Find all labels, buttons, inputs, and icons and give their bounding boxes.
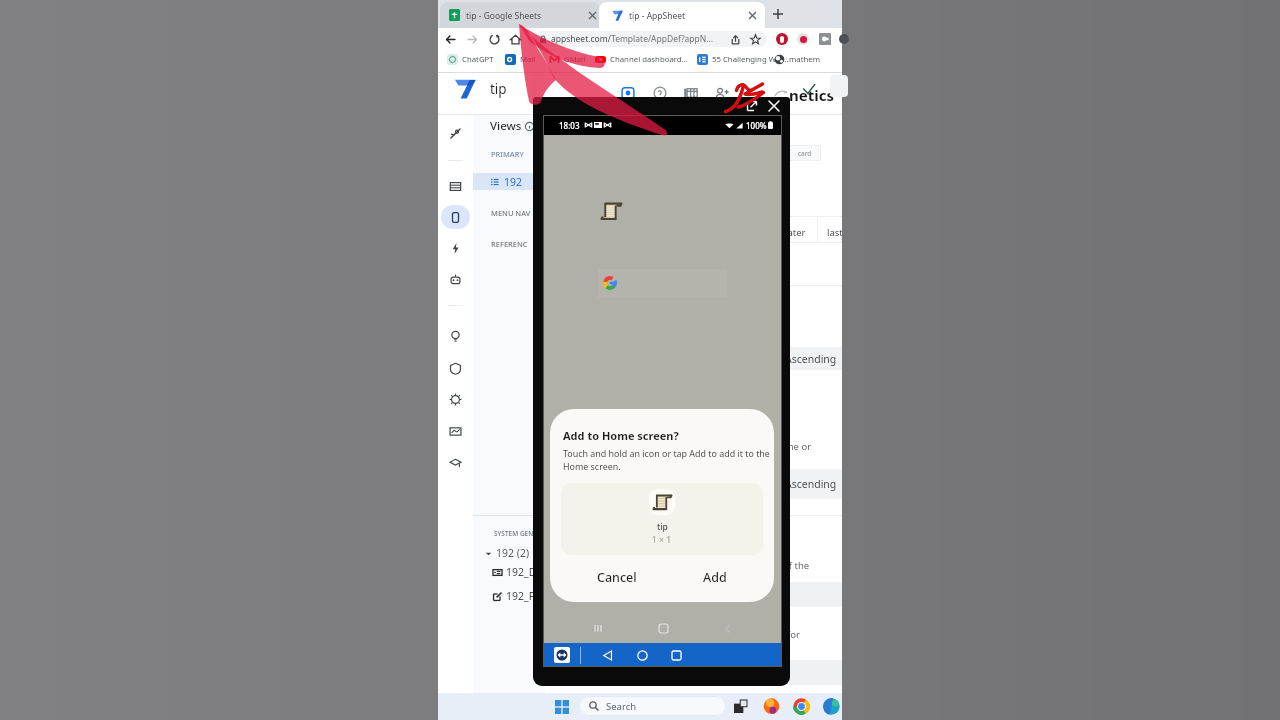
button[interactable]: Security: [441, 356, 470, 380]
button[interactable]: Recent apps: [588, 618, 608, 638]
button[interactable]: Actions: [441, 236, 470, 260]
button[interactable]: Home: [635, 648, 650, 663]
button[interactable]: 192_Fo: [493, 589, 541, 603]
button[interactable]: 55 Challenging Wor...: [694, 52, 792, 67]
staticText: Add: [703, 569, 727, 586]
button[interactable]: Preview: [615, 80, 641, 106]
button[interactable]: Chrome: [792, 697, 810, 715]
button[interactable]: Monitor: [441, 419, 470, 443]
button[interactable]: Close tab: [585, 8, 599, 22]
staticText: Search: [606, 700, 637, 713]
button[interactable]: Start: [553, 698, 570, 715]
button[interactable]: mathem: [771, 52, 823, 67]
staticText: tip - Google Sheets: [466, 10, 542, 22]
button[interactable]: Bookmark: [746, 30, 764, 48]
button[interactable]: Search: [579, 696, 726, 716]
button[interactable]: Record: [797, 33, 809, 45]
staticText: REFERENC: [491, 239, 528, 249]
button[interactable]: Task view: [732, 698, 748, 714]
button[interactable]: Redo: [768, 80, 794, 106]
button[interactable]: Home: [653, 618, 673, 638]
staticText: Views: [490, 118, 522, 134]
button[interactable]: Help: [647, 80, 673, 106]
staticText: 55 Challenging Wor...: [712, 54, 789, 65]
staticText: GMail: [564, 54, 586, 65]
button[interactable]: Manage: [441, 451, 470, 475]
button[interactable]: [598, 269, 727, 298]
staticText: 100%: [746, 120, 767, 131]
button[interactable]: tip - Google Sheets: [440, 2, 600, 28]
button[interactable]: Share: [726, 30, 744, 48]
staticText: for: [787, 628, 800, 641]
staticText: Add to Home screen?: [563, 428, 679, 443]
staticText: Ascending: [785, 477, 837, 491]
button[interactable]: Settings: [441, 387, 470, 411]
staticText: later: [785, 226, 806, 239]
staticText: tip: [490, 80, 507, 98]
staticText: Channel dashboard...: [610, 54, 688, 65]
button[interactable]: App: [441, 205, 470, 229]
staticText: of the: [783, 559, 810, 572]
button[interactable]: Add user: [709, 80, 735, 106]
button[interactable]: Bots: [441, 267, 470, 291]
staticText: Template/AppDef?appN...: [611, 33, 714, 45]
button[interactable]: Pop out: [744, 98, 760, 114]
staticText: one or: [782, 440, 812, 453]
staticText: card: [798, 149, 812, 158]
button[interactable]: Mail: [502, 52, 539, 67]
staticText: 192 (2): [496, 546, 530, 560]
button[interactable]: Extension: [776, 33, 788, 45]
button[interactable]: Data: [441, 174, 470, 198]
button[interactable]: 192: [473, 173, 545, 190]
button[interactable]: Back: [600, 648, 615, 663]
staticText: tip: [657, 521, 668, 533]
staticText: last: [827, 226, 843, 239]
staticText: Cancel: [597, 569, 637, 586]
button[interactable]: 192 (2): [485, 546, 530, 560]
button[interactable]: ChatGPT: [444, 52, 497, 67]
button[interactable]: Intelligence: [441, 324, 470, 348]
staticText: MENU NAV: [491, 208, 531, 218]
button[interactable]: Reload: [485, 30, 503, 48]
staticText: netics: [789, 85, 834, 105]
button[interactable]: Forward: [463, 30, 481, 48]
button[interactable]: Data: [678, 80, 704, 106]
staticText: 18:03: [559, 120, 580, 131]
button[interactable]: Automation: [443, 121, 468, 145]
staticText: mathem: [789, 54, 820, 65]
staticText: ChatGPT: [462, 54, 494, 65]
staticText: 192_De: [506, 565, 543, 579]
staticText: Touch and hold an icon or tap Add to add…: [563, 447, 771, 472]
button[interactable]: Channel dashboard...: [592, 52, 691, 67]
button[interactable]: Cancel: [568, 555, 666, 599]
button[interactable]: tip - AppSheet: [599, 2, 765, 28]
button[interactable]: Resize: [554, 647, 570, 663]
button[interactable]: Firefox: [762, 697, 780, 715]
staticText: PRIMARY: [491, 149, 526, 159]
staticText: 1 × 1: [652, 534, 672, 546]
button[interactable]: Edge: [822, 697, 840, 715]
button[interactable]: 192_De: [493, 565, 543, 579]
staticText: 192: [504, 175, 523, 189]
staticText: SYSTEM GENE: [494, 529, 537, 538]
button[interactable]: GMail: [546, 52, 589, 67]
staticText: 192_Fo: [506, 589, 541, 603]
button[interactable]: New tab: [769, 5, 787, 23]
button[interactable]: Close tab: [745, 8, 759, 22]
button[interactable]: Profile: [839, 34, 849, 44]
button[interactable]: appsheet.com/: [534, 31, 767, 47]
button[interactable]: Extensions: [819, 33, 831, 45]
staticText: Mail: [520, 54, 536, 65]
button[interactable]: Recents: [669, 648, 684, 663]
staticText: Ascending: [785, 352, 837, 366]
button[interactable]: Home: [506, 30, 524, 48]
staticText: tip - AppSheet: [629, 10, 686, 22]
button[interactable]: Add: [666, 555, 764, 599]
staticText: appsheet.com/: [551, 33, 611, 45]
button[interactable]: Close: [766, 98, 782, 114]
button[interactable]: Back: [441, 30, 459, 48]
